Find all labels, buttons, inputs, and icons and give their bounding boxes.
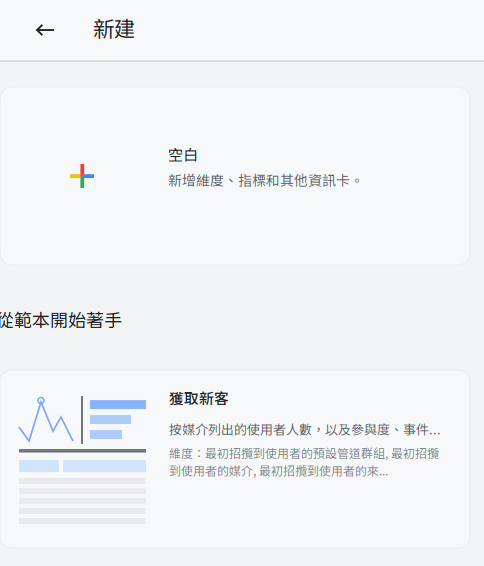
staticText: 新建: [93, 12, 135, 43]
button[interactable]: 獲取新客: [0, 370, 470, 548]
staticText: 新增維度、指標和其他資訊卡。: [168, 170, 364, 190]
staticText: 維度：最初招攬到使用者的預設管道群組, 最初招攬到使用者的媒介, 最初招攬到使用…: [169, 444, 439, 479]
button[interactable]: 空白: [0, 87, 470, 265]
button[interactable]: 返回: [0, 0, 93, 60]
staticText: 從範本開始著手: [0, 306, 122, 332]
staticText: 獲取新客: [169, 387, 229, 408]
staticText: 按媒介列出的使用者人數，以及參與度、事件...: [169, 419, 441, 438]
staticText: 空白: [168, 143, 198, 165]
